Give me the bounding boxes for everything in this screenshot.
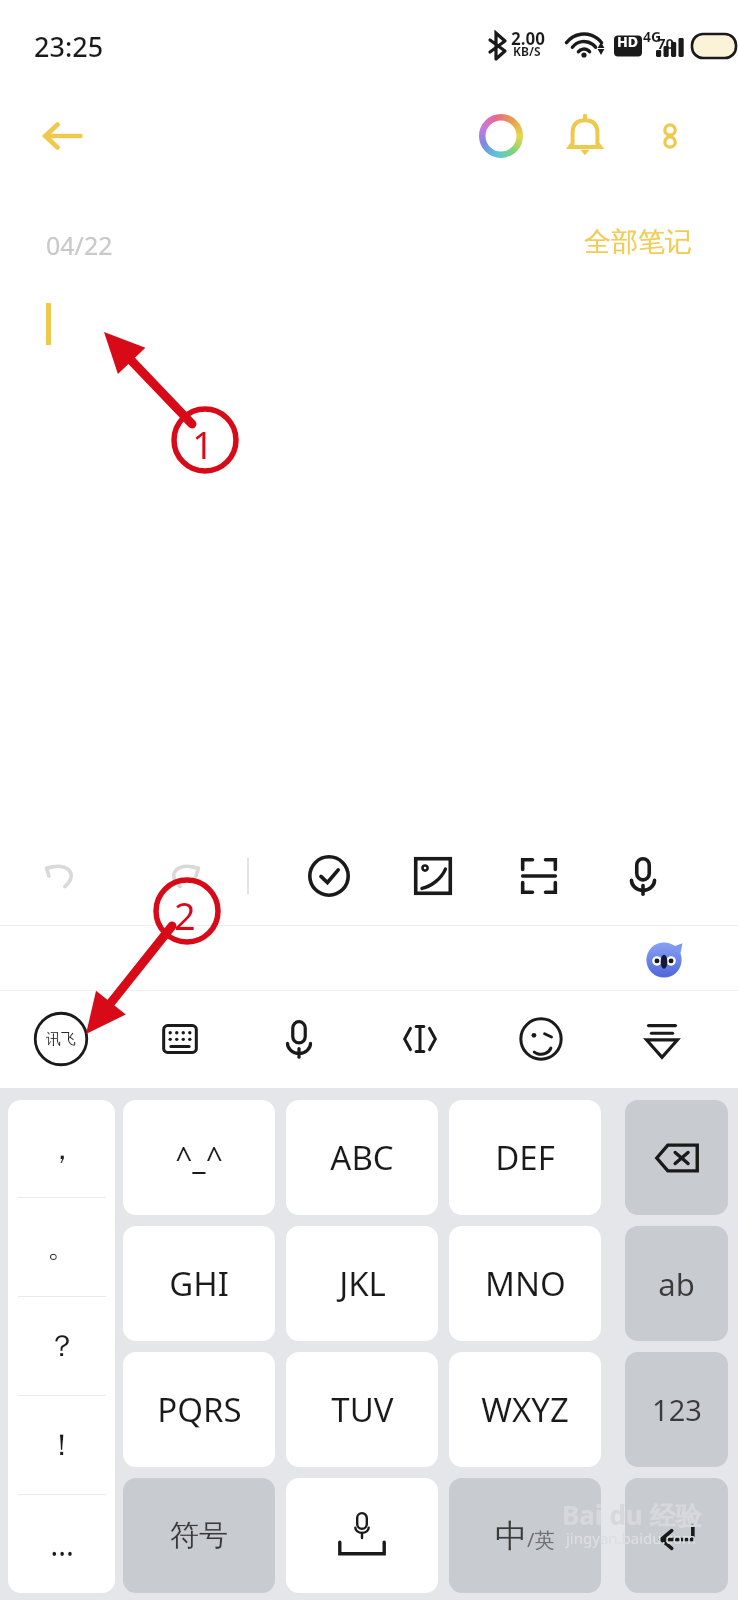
button[interactable]: ABC xyxy=(286,1100,438,1215)
button[interactable]: Back xyxy=(22,100,102,172)
button[interactable]: PQRS xyxy=(123,1352,275,1467)
staticText: 4G xyxy=(643,27,662,46)
button[interactable]: Todo list xyxy=(293,840,365,912)
staticText: MNO xyxy=(485,1261,566,1306)
button[interactable]: 符号 xyxy=(123,1478,275,1593)
staticText: DEF xyxy=(495,1135,555,1180)
button[interactable]: ， xyxy=(8,1100,115,1593)
staticText: 123 xyxy=(652,1390,702,1429)
staticText: WXYZ xyxy=(481,1387,569,1432)
button[interactable]: Undo xyxy=(24,840,96,912)
staticText: Bai du 经验 xyxy=(562,1497,702,1533)
button[interactable]: Redo xyxy=(149,840,221,912)
staticText: 全部笔记 xyxy=(584,225,692,259)
staticText: HD xyxy=(617,32,638,51)
button[interactable]: GHI xyxy=(123,1226,275,1341)
staticText: ^_^ xyxy=(175,1137,223,1178)
staticText: 1 xyxy=(192,418,214,470)
button[interactable]: TUV xyxy=(286,1352,438,1467)
staticText: 。 xyxy=(47,1228,77,1266)
staticText: ， xyxy=(47,1130,77,1168)
button[interactable]: 全部笔记 xyxy=(556,214,692,270)
staticText: /英 xyxy=(527,1526,555,1553)
staticText: ABC xyxy=(330,1135,394,1180)
button[interactable]: JKL xyxy=(286,1226,438,1341)
staticText: 中 xyxy=(495,1516,527,1556)
button[interactable]: ab xyxy=(625,1226,728,1341)
staticText: 讯飞 xyxy=(46,1030,76,1049)
button[interactable]: Reminder xyxy=(550,100,620,172)
button[interactable]: Hide keyboard xyxy=(626,1003,698,1075)
button[interactable]: Voice input xyxy=(607,840,679,912)
staticText: ab xyxy=(658,1263,695,1305)
button[interactable]: DEF xyxy=(449,1100,601,1215)
staticText: KB/S xyxy=(513,43,541,59)
button[interactable]: Emoji xyxy=(505,1003,577,1075)
button[interactable]: Space xyxy=(286,1478,438,1593)
staticText: 04/22 xyxy=(46,228,113,262)
button[interactable]: WXYZ xyxy=(449,1352,601,1467)
staticText: 2.00 xyxy=(511,27,545,50)
staticText: PQRS xyxy=(157,1387,242,1432)
staticText: GHI xyxy=(169,1261,229,1306)
staticText: 2 xyxy=(174,889,196,941)
staticText: jingyan.baidu.com xyxy=(566,1528,696,1548)
button[interactable]: Insert image xyxy=(397,840,469,912)
button[interactable]: IME mascot xyxy=(636,932,692,988)
button[interactable]: Voice xyxy=(263,1003,335,1075)
staticText: 符号 xyxy=(170,1517,228,1554)
button[interactable]: iFlytek xyxy=(25,1003,97,1075)
staticText: … xyxy=(50,1524,74,1565)
button[interactable]: MNO xyxy=(449,1226,601,1341)
staticText: 70 xyxy=(657,33,675,53)
button[interactable]: Chinese English toggle xyxy=(449,1478,601,1593)
button[interactable]: Backspace xyxy=(625,1100,728,1215)
button[interactable]: Scan xyxy=(503,840,575,912)
button[interactable]: Enter xyxy=(625,1478,728,1593)
button[interactable]: More options xyxy=(636,100,704,172)
button[interactable]: 123 xyxy=(625,1352,728,1467)
staticText: TUV xyxy=(331,1387,394,1432)
staticText: 23:25 xyxy=(34,28,104,65)
button[interactable]: ^_^ xyxy=(123,1100,275,1215)
staticText: ？ xyxy=(47,1327,77,1365)
button[interactable]: Keyboard layout xyxy=(144,1003,216,1075)
staticText: ！ xyxy=(47,1426,77,1464)
staticText: JKL xyxy=(339,1261,386,1306)
button[interactable]: Theme xyxy=(466,100,536,172)
button[interactable]: Move cursor xyxy=(384,1003,456,1075)
